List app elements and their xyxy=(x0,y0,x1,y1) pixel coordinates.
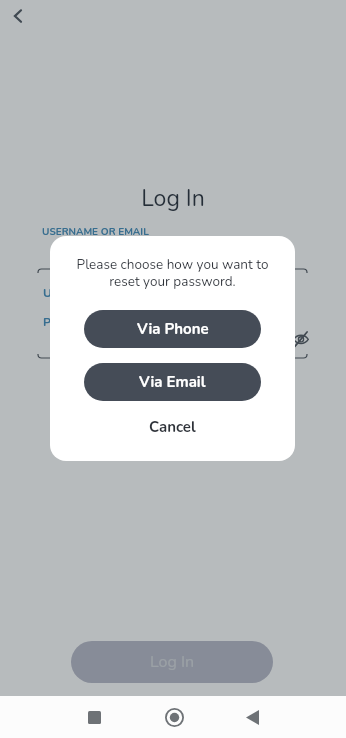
staticText: Via Phone xyxy=(137,319,209,339)
staticText: Please choose how you want to reset your… xyxy=(50,255,295,291)
button[interactable]: Back xyxy=(0,0,36,36)
button[interactable]: Back xyxy=(232,696,272,736)
staticText: PASSWORD xyxy=(43,314,114,330)
button[interactable]: Log In xyxy=(71,641,273,683)
staticText: Log In xyxy=(150,651,195,673)
staticText: Log In xyxy=(0,183,346,214)
button[interactable]: Via Phone xyxy=(84,310,261,348)
button[interactable]: Via Email xyxy=(84,363,261,401)
button[interactable]: Show password xyxy=(290,328,312,350)
button[interactable]: Recent apps xyxy=(74,696,114,736)
button[interactable]: Cancel xyxy=(84,410,261,444)
staticText: Via Email xyxy=(139,372,206,392)
staticText: USERNAME xyxy=(43,285,111,301)
staticText: USERNAME OR EMAIL xyxy=(42,225,149,239)
staticText: Cancel xyxy=(149,417,196,437)
button[interactable]: Home xyxy=(154,696,194,736)
